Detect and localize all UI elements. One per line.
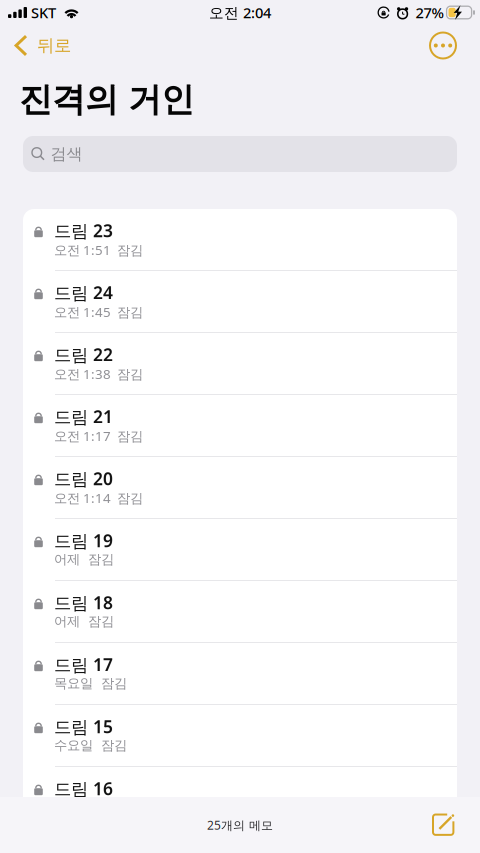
staticText: 드림 16: [54, 777, 113, 800]
button[interactable]: 드림 24: [23, 271, 457, 333]
button[interactable]: 드림 18: [23, 581, 457, 643]
staticText: 드림 20: [54, 467, 113, 490]
button[interactable]: More: [430, 26, 480, 64]
staticText: 진격의 거인: [19, 79, 194, 120]
staticText: 목요일 잠김: [54, 675, 127, 691]
staticText: 오전 1:51 잠김: [54, 241, 143, 259]
staticText: 드림 21: [54, 405, 113, 428]
button[interactable]: 드림 19: [23, 519, 457, 581]
staticText: 뒤로: [37, 35, 71, 56]
staticText: 드림 17: [54, 653, 113, 676]
staticText: 드림 22: [54, 343, 113, 366]
staticText: 어제 잠김: [54, 613, 114, 629]
button[interactable]: 드림 17: [23, 643, 457, 705]
button[interactable]: 드림 22: [23, 333, 457, 395]
staticText: 오전 1:17 잠김: [54, 427, 143, 445]
staticText: 27%: [416, 3, 444, 22]
staticText: 드림 24: [54, 281, 113, 304]
staticText: 오전 1:45 잠김: [54, 303, 143, 321]
staticText: 드림 15: [54, 715, 113, 738]
staticText: 수요일 잠김: [54, 737, 127, 753]
button[interactable]: 뒤로: [0, 28, 71, 62]
button[interactable]: Compose: [431, 804, 480, 845]
staticText: 드림 23: [54, 219, 113, 242]
staticText: 오전 1:14 잠김: [54, 489, 143, 507]
button[interactable]: 드림 21: [23, 395, 457, 457]
staticText: 검색: [50, 144, 82, 164]
button[interactable]: 검색: [23, 136, 457, 172]
staticText: 오전 1:38 잠김: [54, 365, 143, 383]
button[interactable]: 드림 23: [23, 209, 457, 271]
staticText: 어제 잠김: [54, 551, 114, 567]
button[interactable]: 드림 15: [23, 705, 457, 767]
button[interactable]: 드림 16: [23, 767, 457, 829]
staticText: 드림 19: [54, 529, 113, 552]
staticText: 25개의 메모: [207, 817, 273, 833]
button[interactable]: 드림 20: [23, 457, 457, 519]
staticText: 오전 2:04: [209, 3, 271, 22]
staticText: 드림 18: [54, 591, 113, 614]
staticText: SKT: [31, 3, 56, 22]
